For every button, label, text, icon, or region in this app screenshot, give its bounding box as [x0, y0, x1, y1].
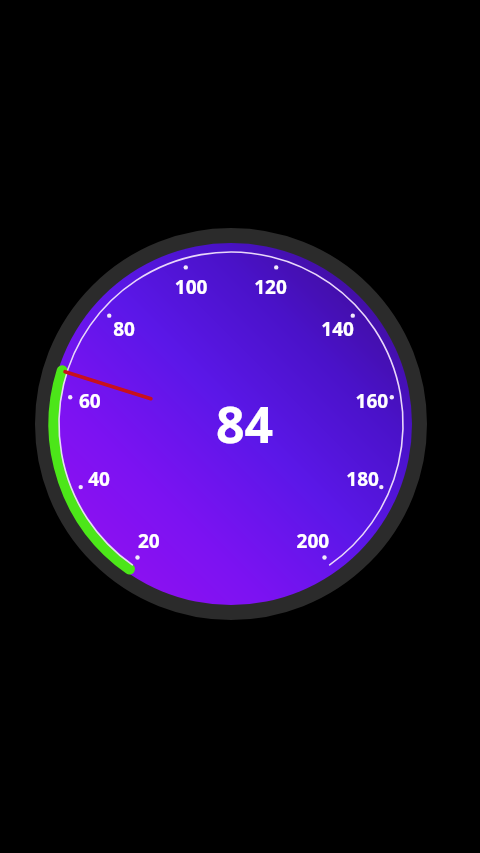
- button[interactable]: Speedometer showing 84: [0, 0, 480, 853]
